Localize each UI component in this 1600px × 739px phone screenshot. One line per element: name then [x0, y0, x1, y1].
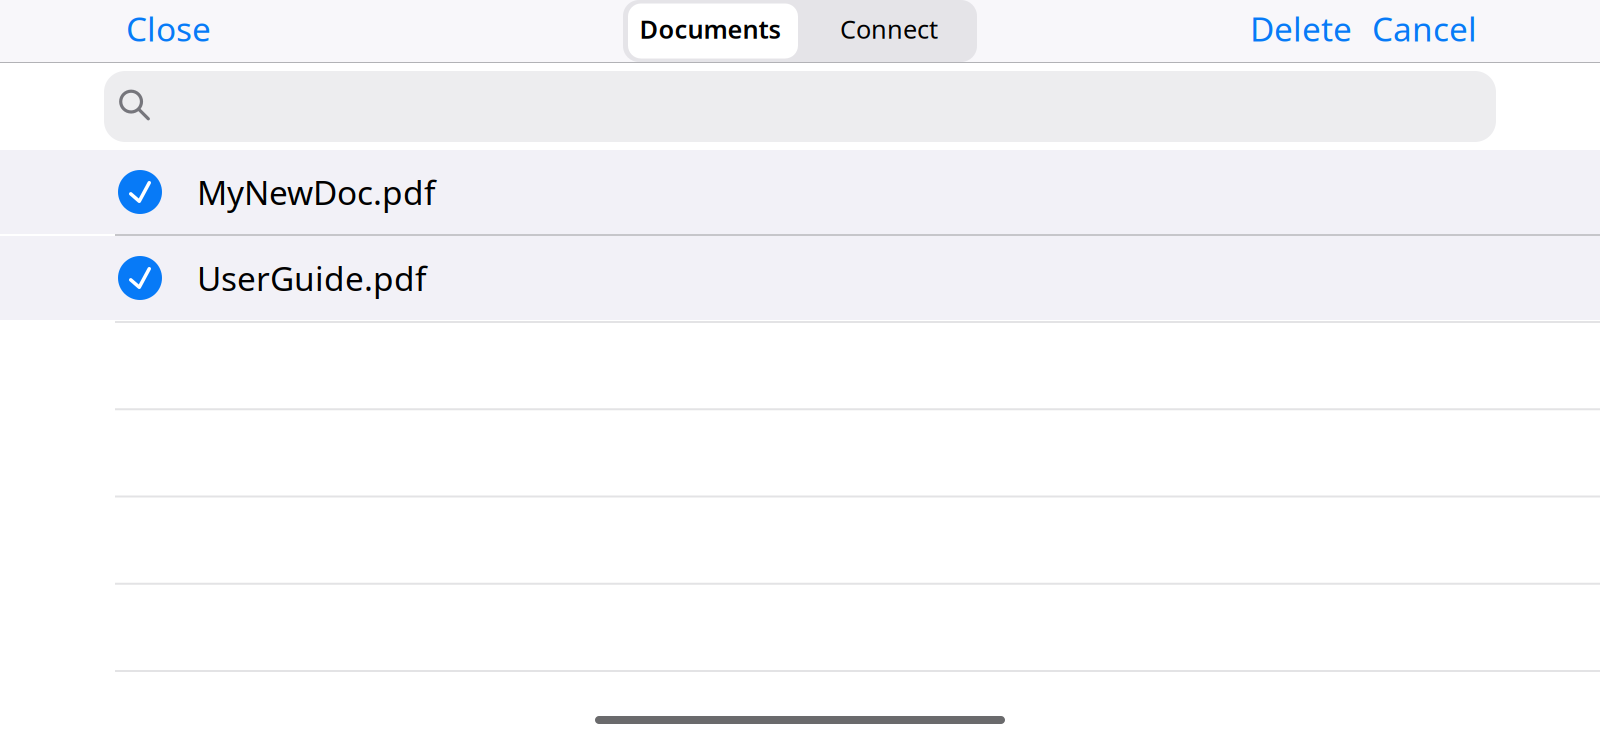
staticText: UserGuide.pdf — [197, 256, 426, 300]
button[interactable]: Delete — [1237, 0, 1361, 62]
button[interactable]: Close — [115, 0, 222, 62]
button[interactable]: UserGuide.pdf — [0, 236, 1600, 320]
button[interactable]: Cancel — [1361, 0, 1488, 62]
button[interactable]: Connect — [798, 3, 976, 58]
staticText: Delete — [1250, 6, 1352, 51]
staticText: Close — [126, 6, 211, 51]
button[interactable]: Search — [0, 63, 1600, 150]
button[interactable]: Documents — [628, 3, 798, 58]
staticText: MyNewDoc.pdf — [197, 170, 435, 214]
button[interactable]: MyNewDoc.pdf — [0, 150, 1600, 234]
staticText: Connect — [840, 12, 938, 46]
staticText: Documents — [639, 12, 780, 46]
staticText: Cancel — [1372, 6, 1477, 51]
